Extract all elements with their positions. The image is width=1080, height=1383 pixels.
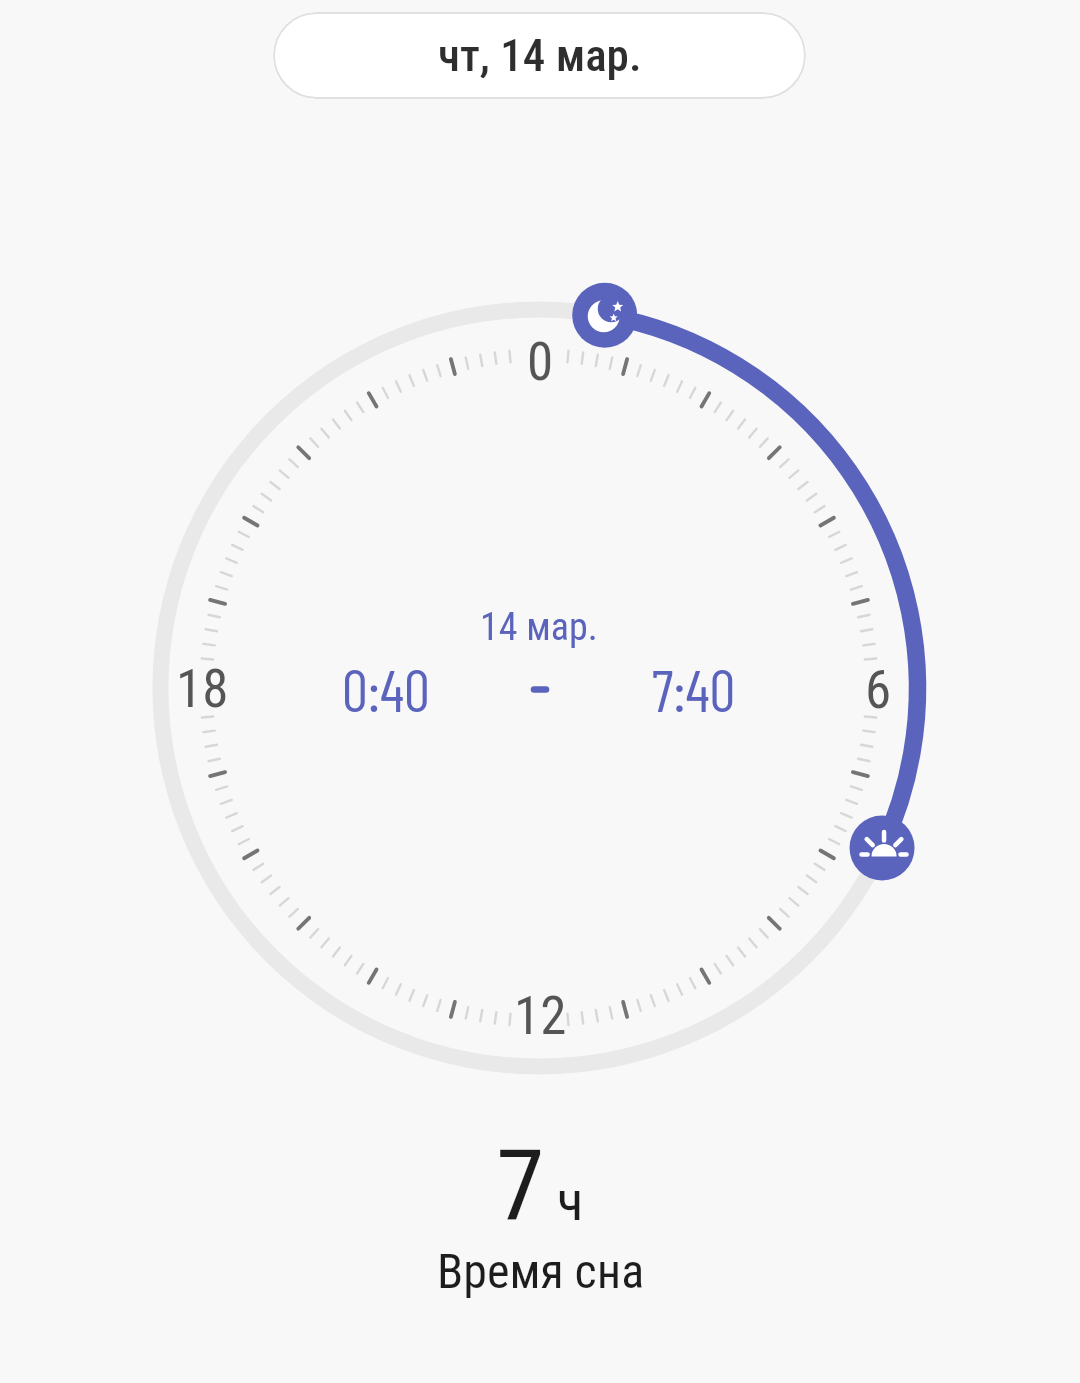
staticText: 7 ч — [496, 1129, 584, 1239]
button[interactable]: чт, 14 мар. — [273, 12, 806, 99]
staticText: 7:40 — [652, 654, 736, 724]
button[interactable] — [572, 282, 638, 348]
staticText: 14 мар. — [480, 605, 598, 650]
staticText: 18 — [176, 658, 229, 720]
staticText: 6 — [865, 659, 892, 721]
staticText: 0:40 — [342, 654, 430, 724]
staticText: 0 — [527, 331, 554, 393]
button[interactable] — [849, 815, 915, 881]
staticText: Время сна — [437, 1243, 645, 1299]
staticText: 12 — [514, 985, 567, 1047]
staticText: чт, 14 мар. — [438, 29, 642, 82]
